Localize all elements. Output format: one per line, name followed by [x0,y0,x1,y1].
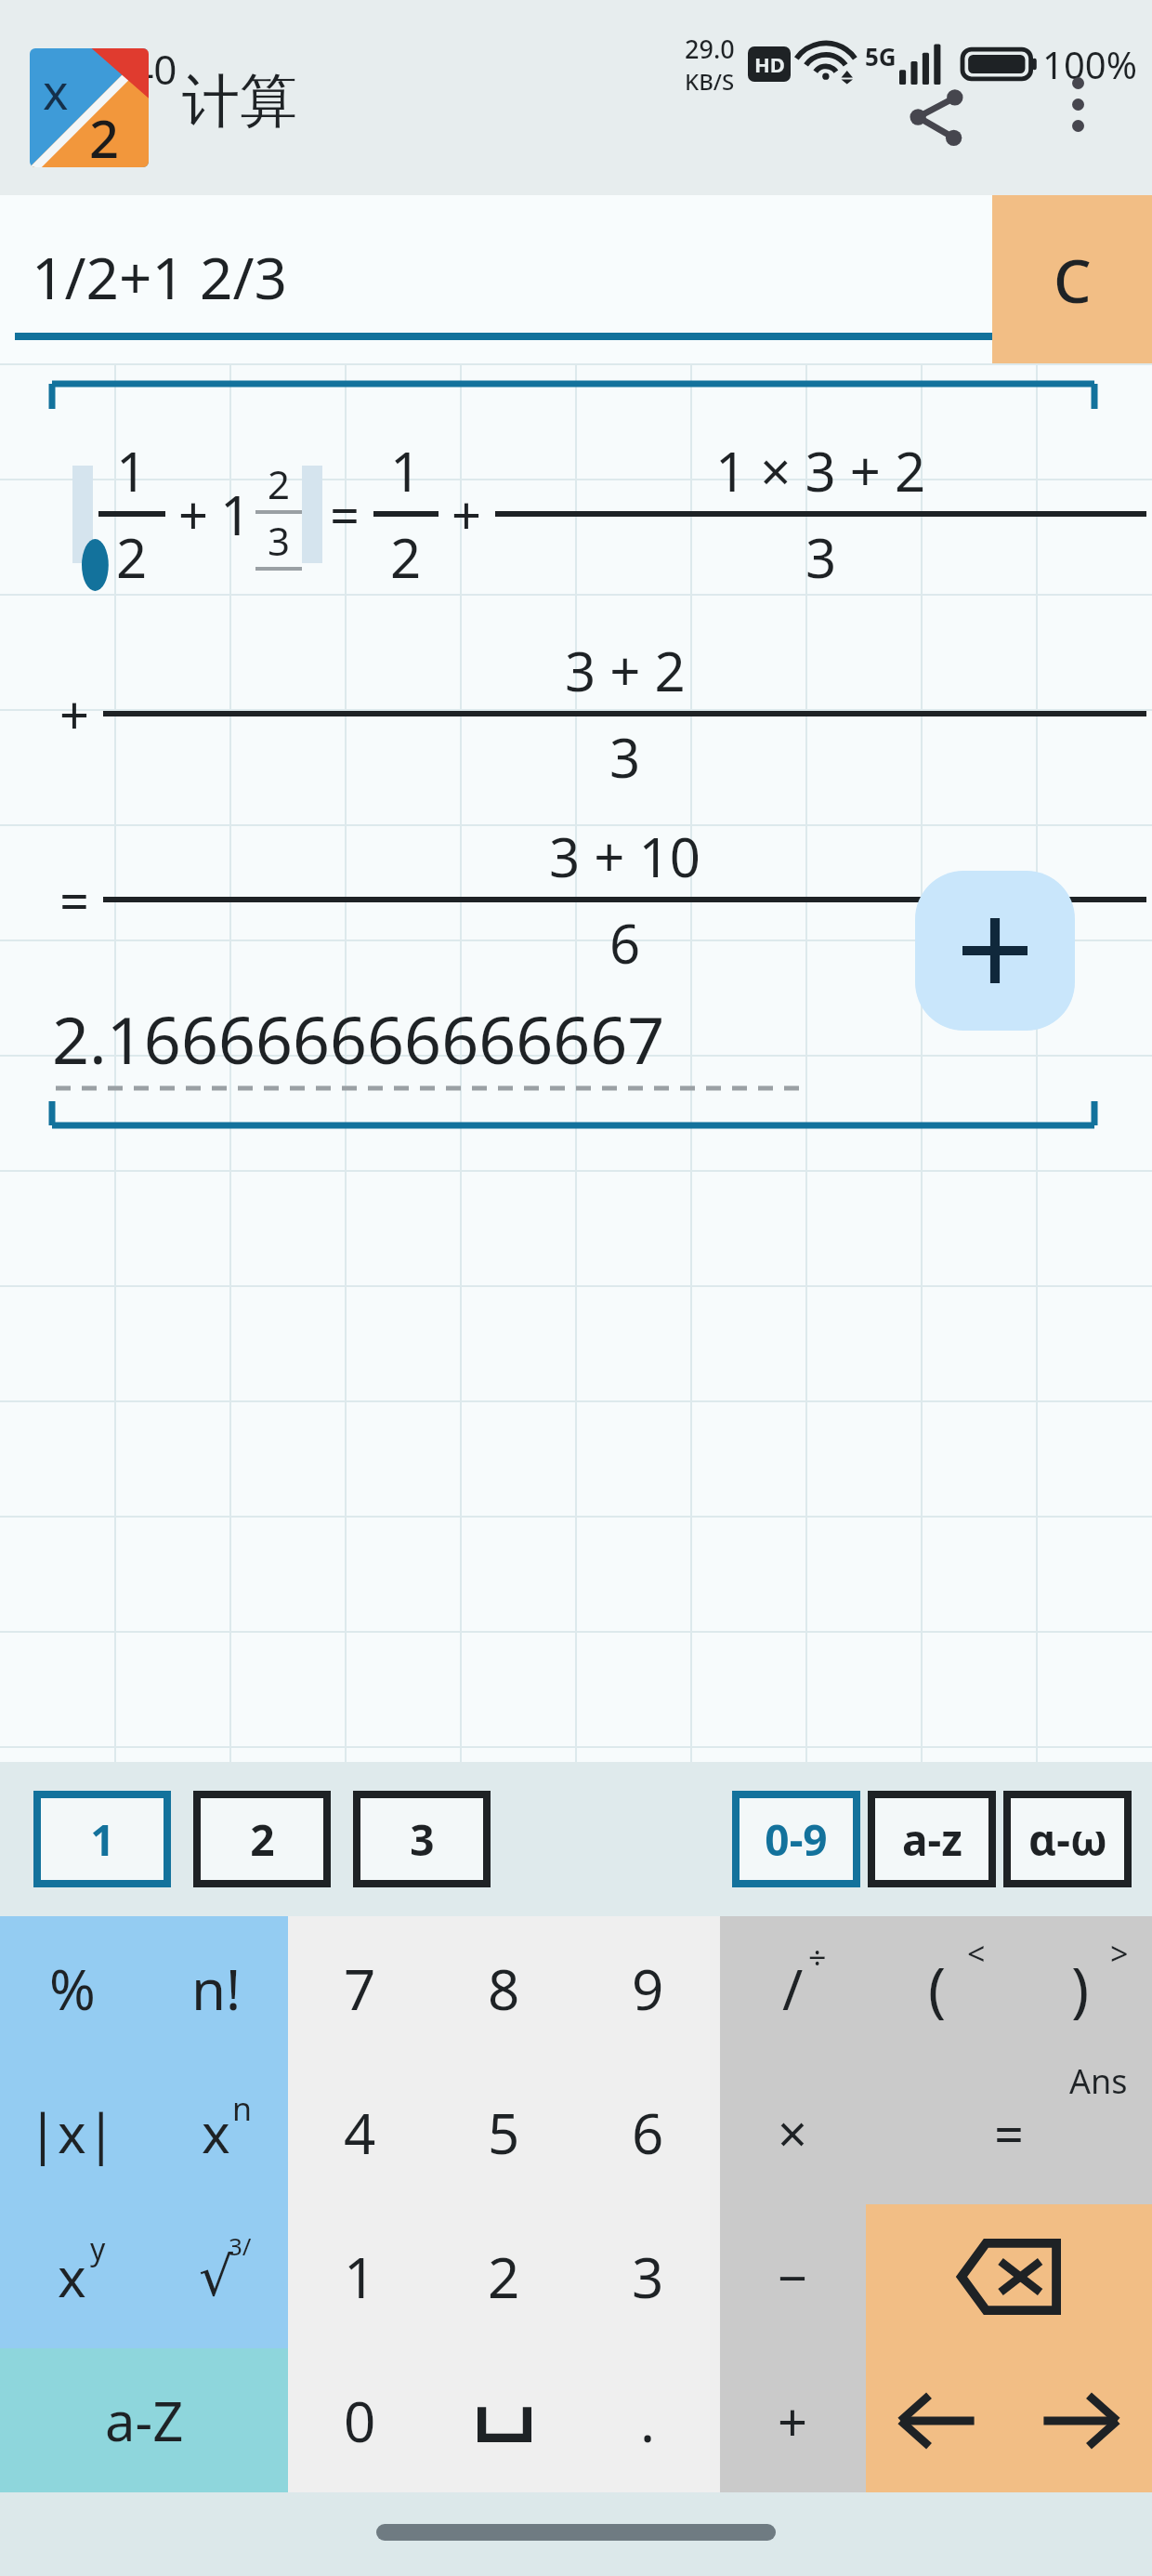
staticText: 2 [250,1810,275,1869]
staticText: 3 + 2 [565,634,686,707]
staticText: x [58,2240,86,2313]
button[interactable]: 9 [576,1916,720,2060]
staticText: n! [191,1951,242,2027]
staticText: |x| [28,2096,116,2169]
button[interactable]: |x| [0,2060,144,2204]
staticText: 2.166666666666667 [52,994,665,1083]
button[interactable]: + [720,2348,866,2492]
staticText: HD [754,50,785,78]
staticText: + [178,479,209,549]
staticText: 7 [344,1951,376,2027]
button[interactable]: 8 [432,1916,576,2060]
staticText: 3 [632,2239,664,2315]
staticText: 8 [488,1951,520,2027]
staticText: = [994,2097,1025,2168]
staticText: − [778,2241,808,2312]
staticText: 2 [488,2239,520,2315]
staticText: 2 [116,520,148,594]
staticText: Ans [1069,2058,1128,2104]
staticText: 6 [632,2095,664,2171]
staticText: 3 + 10 [549,820,700,893]
button[interactable]: 3 [576,2204,720,2348]
staticText: 1 [90,1810,115,1869]
button[interactable]: 2 [197,1794,327,1884]
button[interactable]: 6 [576,2060,720,2204]
staticText: 1 [220,478,252,551]
button[interactable]: 7 [288,1916,432,2060]
button[interactable]: n! [144,1916,288,2060]
staticText: x [43,58,69,124]
button[interactable]: a-Z [0,2348,288,2492]
staticText: + [778,2385,808,2456]
staticText: 2 [390,520,422,594]
staticText: = [59,864,90,935]
button[interactable]: − [720,2204,866,2348]
staticText: + [452,479,482,549]
button[interactable]: ( [866,1916,1009,2060]
staticText: 3 [410,1810,435,1869]
button[interactable]: Share [892,72,981,162]
staticText: y [90,2228,106,2269]
staticText: ( [928,1948,947,2029]
staticText: 3 [805,520,837,594]
button[interactable]: 4 [288,2060,432,2204]
button[interactable]: x [0,2204,144,2348]
button[interactable]: / [720,1916,866,2060]
button[interactable]: 0-9 [736,1794,857,1884]
staticText: 5G [865,40,897,72]
button[interactable]: More options [1033,59,1122,149]
staticText: 100% [1042,39,1137,89]
staticText: α-ω [1028,1810,1107,1869]
staticText: × [778,2097,808,2168]
button[interactable]: α-ω [1007,1794,1128,1884]
staticText: . [640,2383,656,2459]
staticText: 1 [344,2239,376,2315]
button[interactable]: √ [144,2204,288,2348]
button[interactable]: a-z [871,1794,992,1884]
button[interactable]: Backspace [866,2204,1152,2348]
staticText: 5 [488,2095,520,2171]
button[interactable]: . [576,2348,720,2492]
staticText: % [49,1951,96,2027]
staticText: 20:40 [72,41,177,97]
button[interactable]: 1 [288,2204,432,2348]
button[interactable]: = [866,2060,1152,2204]
button[interactable] [432,2348,576,2492]
button[interactable]: 5 [432,2060,576,2204]
staticText: 6 [609,906,641,979]
staticText: 计算 [182,65,297,138]
staticText: C [1054,240,1092,321]
button[interactable]: × [720,2060,866,2204]
staticText: 2 [268,457,291,510]
staticText: √ [199,2245,233,2308]
button[interactable]: 0 [288,2348,432,2492]
button[interactable]: 2 [432,2204,576,2348]
button[interactable]: Move left [866,2348,1009,2492]
button[interactable]: Add [915,871,1075,1031]
staticText: a-z [902,1810,962,1869]
staticText: 9 [632,1951,664,2027]
staticText: 3 [609,720,641,794]
staticText: + [59,678,90,749]
staticText: 3 [268,514,291,567]
button[interactable]: x [144,2060,288,2204]
staticText: n [232,2087,253,2130]
button[interactable]: C [992,195,1152,364]
staticText: KB/S [685,66,735,97]
staticText: = [330,479,360,549]
button[interactable]: 3 [357,1794,487,1884]
button[interactable]: App icon [30,48,149,167]
staticText: 2 [89,102,120,167]
staticText: > [1110,1932,1129,1975]
staticText: < [967,1932,986,1975]
staticText: 1/2+1 2/3 [32,238,288,316]
button[interactable]: % [0,1916,144,2060]
staticText: ) [1071,1948,1090,2029]
button[interactable]: Move right [1009,2348,1152,2492]
staticText: 3/ [229,2229,252,2262]
button[interactable]: ) [1009,1916,1152,2060]
staticText: 0 [344,2383,376,2459]
staticText: 1 [116,434,148,507]
staticText: 29.0 [685,32,735,66]
button[interactable]: 1 [37,1794,167,1884]
